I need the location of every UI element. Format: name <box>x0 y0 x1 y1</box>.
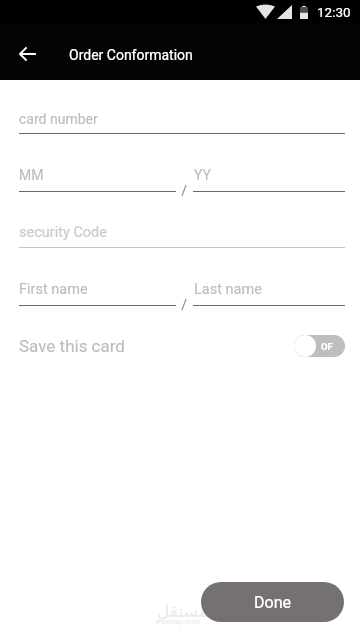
button[interactable]: Done <box>201 582 344 622</box>
staticText: MM <box>19 167 44 183</box>
staticText: Order Conformation <box>69 47 193 63</box>
staticText: OF <box>321 341 333 352</box>
staticText: Done <box>254 593 291 612</box>
staticText: card number <box>19 111 98 127</box>
staticText: Save this card <box>19 336 125 356</box>
button[interactable]: Save this card <box>0 330 360 362</box>
staticText: مستقل <box>157 601 208 621</box>
staticText: First name <box>19 281 88 298</box>
staticText: Last name <box>194 281 262 298</box>
staticText: security Code <box>19 224 107 241</box>
staticText: YY <box>194 167 211 183</box>
staticText: 12:30 <box>317 4 351 20</box>
staticText: mostaql.com <box>156 617 201 626</box>
button[interactable]: Back <box>11 37 45 71</box>
